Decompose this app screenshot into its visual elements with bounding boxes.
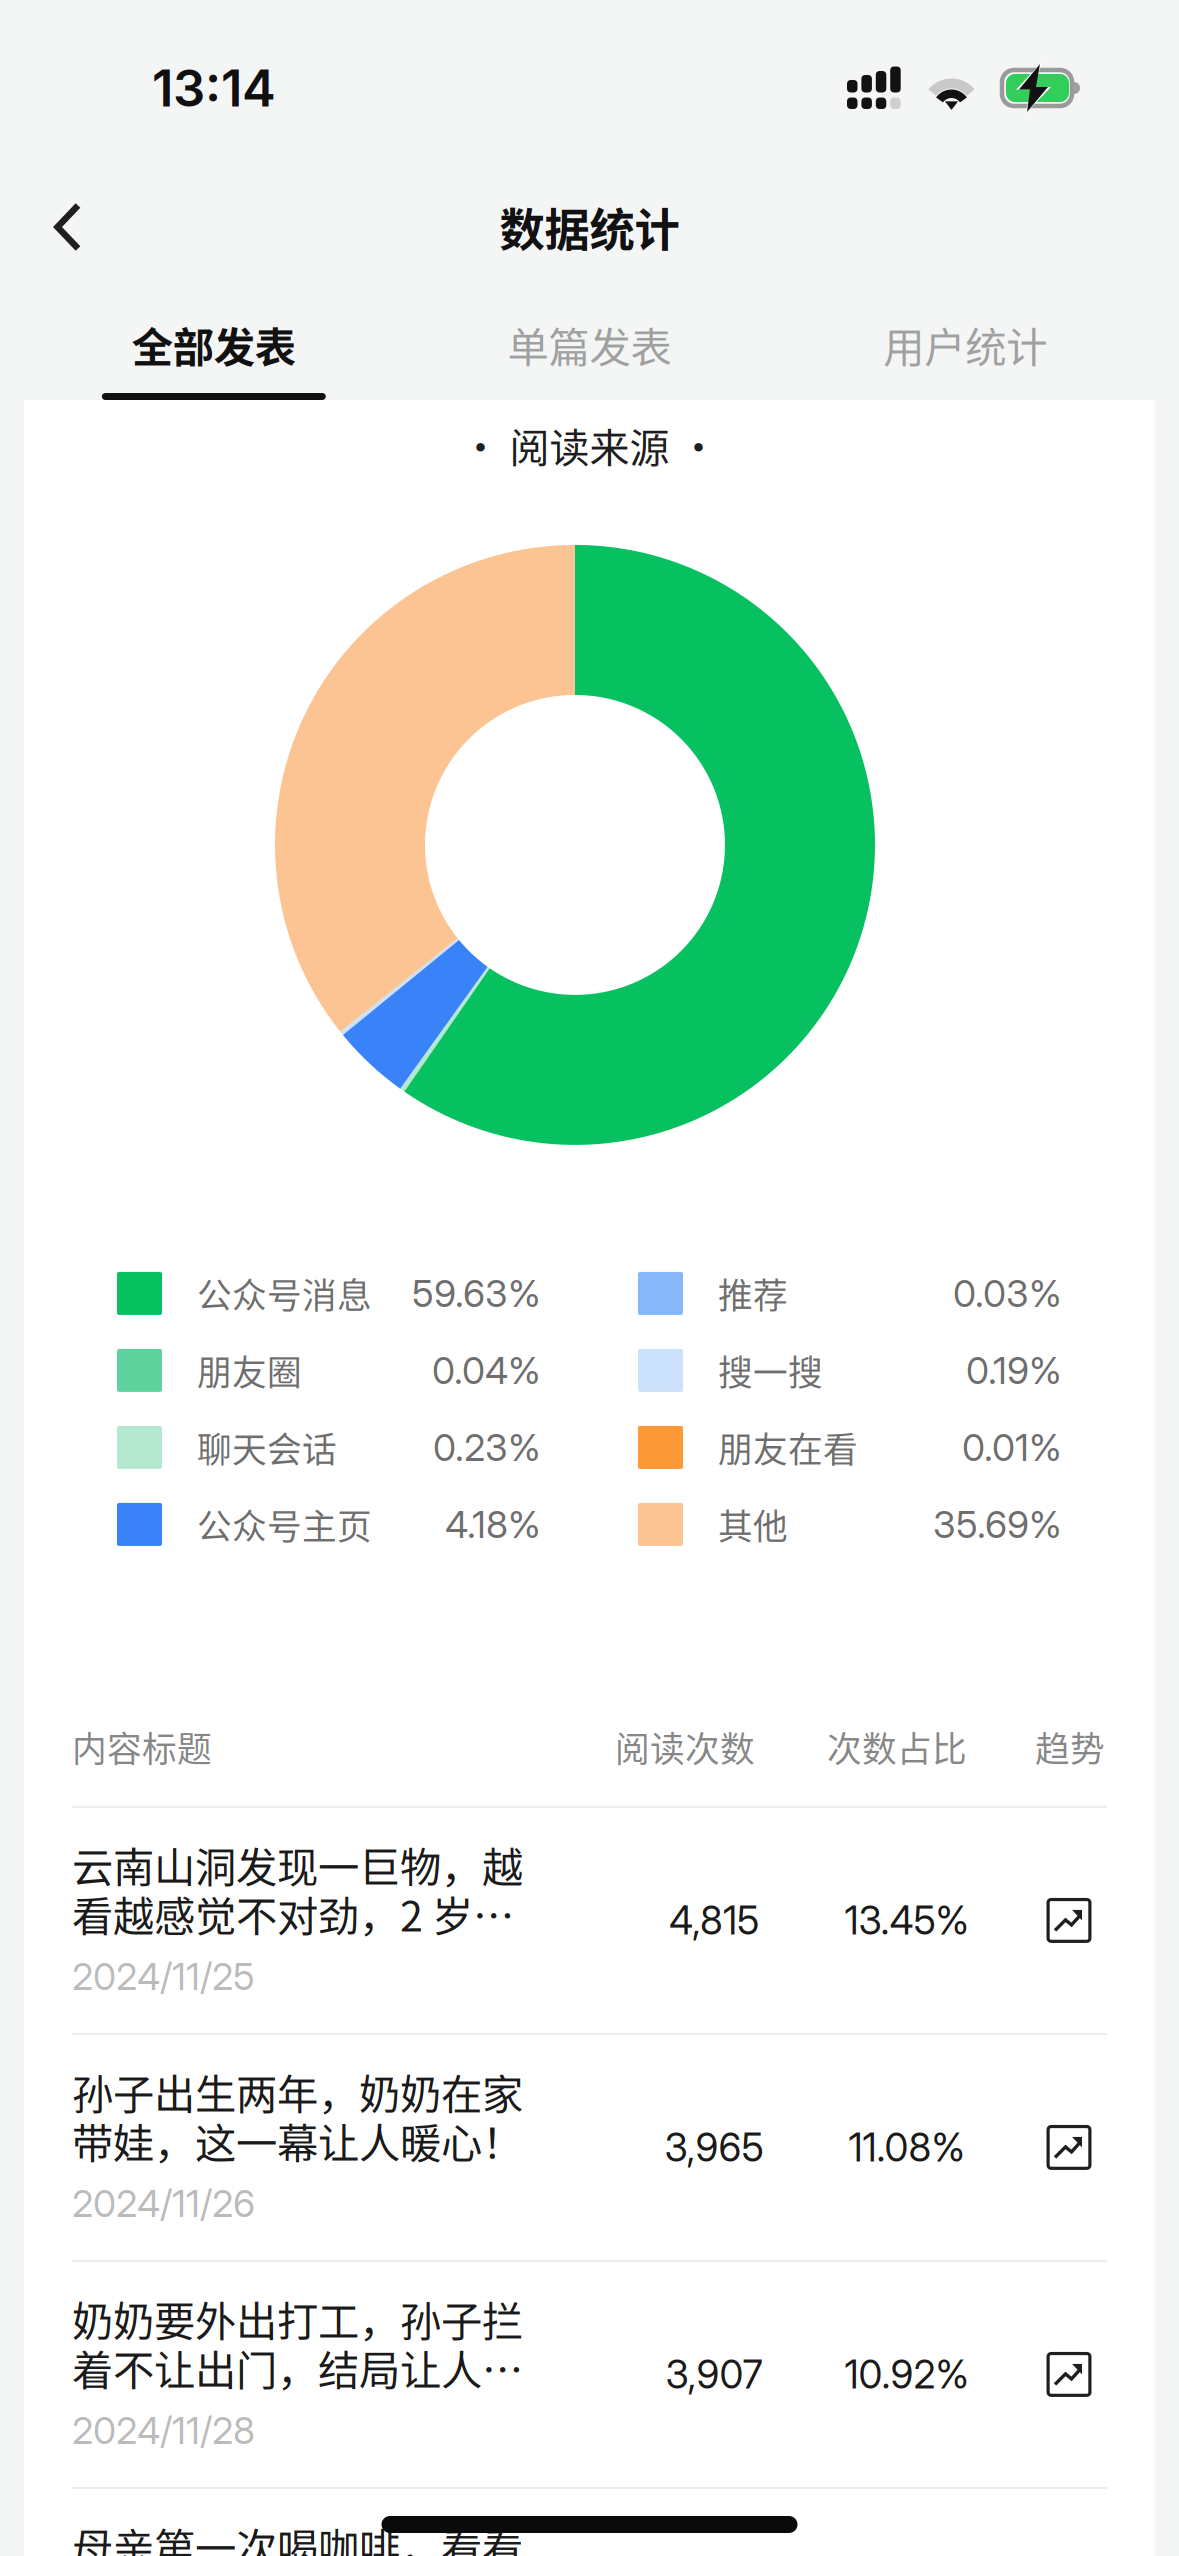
staticText: 其他 (718, 1499, 788, 1549)
button[interactable]: 云南山洞发现一巨物，越 (72, 1808, 1107, 2033)
staticText: 0.03% (953, 1271, 1062, 1316)
staticText: 0.01% (962, 1425, 1062, 1470)
staticText: 次数占比 (827, 1722, 967, 1772)
staticText: 趋势 (1035, 1722, 1105, 1772)
button[interactable]: 全部发表 (26, 278, 402, 400)
staticText: 公众号消息 (197, 1268, 372, 1318)
button[interactable]: 单篇发表 (402, 278, 777, 400)
staticText: 带娃，这一幕让人暖心！ (72, 2110, 523, 2170)
staticText: 朋友圈 (197, 1345, 302, 1395)
button[interactable]: Back (0, 177, 136, 277)
staticText: 2024/11/25 (72, 1954, 255, 1999)
staticText: 4.18% (445, 1502, 541, 1547)
button[interactable]: 用户统计 (777, 278, 1153, 400)
staticText: 推荐 (718, 1268, 788, 1318)
staticText: 59.63% (412, 1271, 541, 1316)
staticText: 数据统计 (499, 194, 679, 260)
staticText: 0.19% (966, 1348, 1062, 1393)
staticText: 着不让出门，结局让人… (72, 2337, 523, 2397)
staticText: 2024/11/28 (72, 2408, 255, 2453)
button[interactable]: 母亲第一次喝咖啡，看看 (72, 2489, 1107, 2556)
button[interactable]: 孙子出生两年，奶奶在家 (72, 2035, 1107, 2260)
staticText: 2024/11/26 (72, 2181, 255, 2226)
staticText: 4,815 (669, 1897, 759, 1944)
staticText: 聊天会话 (197, 1422, 337, 1472)
staticText: 10.92% (844, 2351, 969, 2398)
staticText: 搜一搜 (718, 1345, 823, 1395)
staticText: 公众号主页 (197, 1499, 372, 1549)
staticText: 奶奶要外出打工，孙子拦 (72, 2288, 523, 2348)
staticText: 0.23% (433, 1425, 541, 1470)
staticText: 内容标题 (72, 1722, 212, 1772)
staticText: 3,907 (665, 2351, 762, 2398)
staticText: 11.08% (848, 2124, 965, 2171)
staticText: 单篇发表 (507, 315, 671, 374)
staticText: 母亲第一次喝咖啡，看看 (72, 2515, 523, 2556)
staticText: 全部发表 (132, 315, 296, 374)
staticText: 0.04% (432, 1348, 541, 1393)
staticText: 孙子出生两年，奶奶在家 (72, 2061, 523, 2121)
staticText: 阅读次数 (615, 1722, 755, 1772)
staticText: 看越感觉不对劲，2 岁… (72, 1883, 514, 1943)
button[interactable]: 奶奶要外出打工，孙子拦 (72, 2262, 1107, 2487)
staticText: 云南山洞发现一巨物，越 (72, 1834, 523, 1894)
staticText: 用户统计 (883, 315, 1047, 374)
staticText: 35.69% (933, 1502, 1062, 1547)
staticText: · 阅读来源 · (460, 416, 718, 474)
staticText: 朋友在看 (718, 1422, 858, 1472)
staticText: 13.45% (844, 1897, 969, 1944)
staticText: 3,965 (664, 2124, 763, 2171)
staticText: 13:14 (152, 57, 276, 119)
